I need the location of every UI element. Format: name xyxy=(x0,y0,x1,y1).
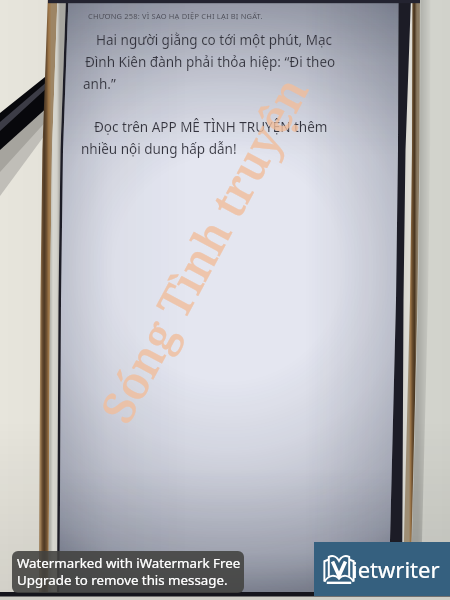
button[interactable]: Vietwriter xyxy=(314,542,450,596)
staticText: nhiều nội dung hấp dẫn! xyxy=(81,140,237,158)
staticText: Watermarked with iWatermark Free xyxy=(17,554,241,572)
staticText: Hai người giằng co tới một phút, Mạc xyxy=(96,31,332,49)
staticText: Đình Kiên đành phải thỏa hiệp: “Đi theo xyxy=(85,53,336,71)
staticText: Đọc trên APP MÊ TÌNH TRUYỆN thêm xyxy=(94,118,328,136)
button[interactable]: Watermarked with iWatermark Free xyxy=(12,551,244,593)
staticText: Upgrade to remove this message. xyxy=(17,571,228,589)
staticText: ietwriter xyxy=(352,554,440,584)
staticText: CHƯƠNG 258: VÌ SAO HẠ DIỆP CHI LẠI BỊ NG… xyxy=(88,11,263,21)
staticText: Sóng Tình truyện xyxy=(86,66,321,433)
staticText: anh.” xyxy=(83,75,116,93)
